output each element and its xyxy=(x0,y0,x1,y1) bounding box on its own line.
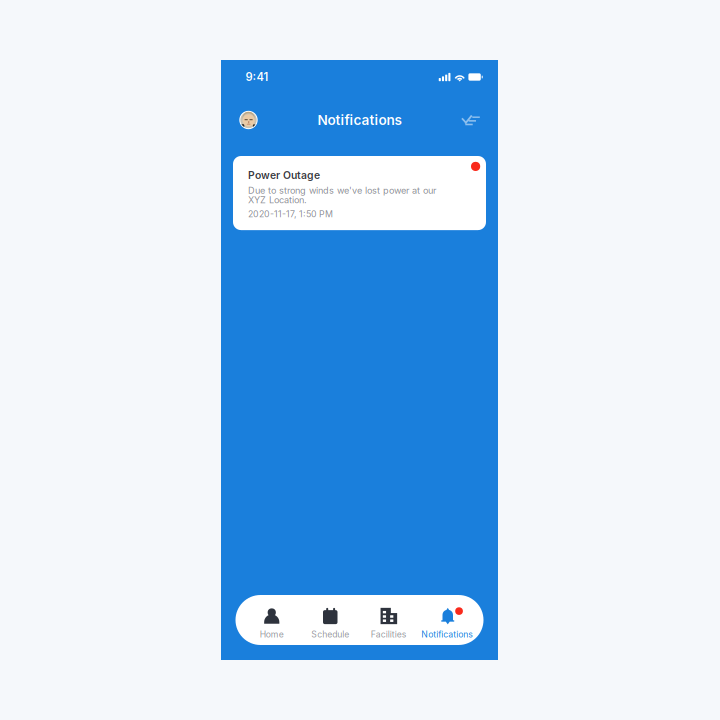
button[interactable]: Schedule xyxy=(301,595,359,645)
button[interactable]: Power Outage xyxy=(233,156,486,230)
staticText: Notifications xyxy=(421,629,473,639)
staticText: Facilities xyxy=(371,629,407,639)
staticText: 2020-11-17, 1:50 PM xyxy=(248,209,333,219)
button[interactable]: Notifications xyxy=(418,595,476,645)
staticText: Notifications xyxy=(317,112,401,128)
button[interactable]: Facilities xyxy=(359,595,418,645)
staticText: Schedule xyxy=(311,629,349,639)
staticText: Home xyxy=(260,629,284,639)
staticText: Due to strong winds we've lost power at … xyxy=(248,185,436,196)
staticText: 9:41 xyxy=(245,70,268,84)
button[interactable]: Home xyxy=(242,595,301,645)
staticText: Power Outage xyxy=(248,169,320,182)
button[interactable]: Mark all as read xyxy=(456,109,485,131)
staticText: XYZ Location. xyxy=(248,194,307,206)
button[interactable]: Profile xyxy=(234,106,263,134)
